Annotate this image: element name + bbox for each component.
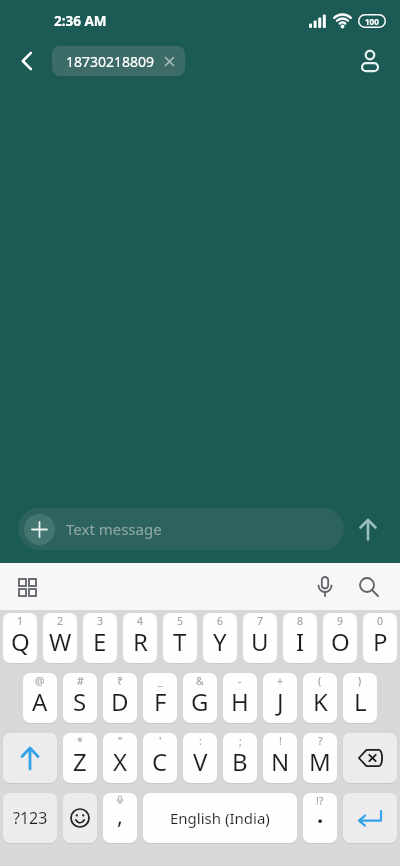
staticText: Z bbox=[73, 745, 87, 778]
staticText: 9 bbox=[337, 614, 344, 628]
button[interactable]: . bbox=[303, 793, 337, 843]
button[interactable]: : bbox=[183, 733, 217, 783]
staticText: G bbox=[191, 685, 209, 718]
button[interactable]: 6 bbox=[203, 613, 237, 663]
button[interactable]: ?123 bbox=[3, 793, 57, 843]
staticText: # bbox=[77, 674, 84, 688]
button[interactable]: _ bbox=[143, 673, 177, 723]
button[interactable]: 7 bbox=[243, 613, 277, 663]
button[interactable]: " bbox=[103, 733, 137, 783]
staticText: 18730218809 bbox=[66, 52, 155, 71]
staticText: ?123 bbox=[13, 807, 48, 829]
staticText: , bbox=[117, 800, 123, 830]
staticText: S bbox=[73, 685, 87, 718]
staticText: & bbox=[196, 674, 204, 688]
staticText: M bbox=[309, 745, 331, 778]
staticText: 3 bbox=[97, 614, 104, 628]
staticText: " bbox=[118, 734, 123, 748]
staticText: 7 bbox=[257, 614, 264, 628]
button[interactable]: ) bbox=[343, 673, 377, 723]
button[interactable]: + bbox=[263, 673, 297, 723]
staticText: 4 bbox=[137, 614, 144, 628]
button[interactable]: 2 bbox=[43, 613, 77, 663]
button[interactable]: ( bbox=[303, 673, 337, 723]
staticText: @ bbox=[35, 674, 45, 688]
staticText: Q bbox=[11, 625, 30, 658]
button[interactable] bbox=[308, 570, 342, 604]
staticText: J bbox=[277, 685, 284, 718]
staticText: K bbox=[313, 685, 328, 718]
staticText: V bbox=[193, 745, 208, 778]
button[interactable]: ₹ bbox=[103, 673, 137, 723]
staticText: D bbox=[111, 685, 129, 718]
staticText: 2:36 AM bbox=[54, 12, 107, 30]
staticText: ? bbox=[318, 734, 323, 748]
button[interactable]: 3 bbox=[83, 613, 117, 663]
staticText: 8 bbox=[297, 614, 304, 628]
button[interactable]: ; bbox=[223, 733, 257, 783]
staticText: T bbox=[173, 625, 187, 658]
button[interactable]: 1 bbox=[3, 613, 37, 663]
staticText: ₹ bbox=[117, 674, 124, 688]
staticText: 6 bbox=[217, 614, 224, 628]
staticText: ' bbox=[159, 734, 162, 748]
button[interactable]: Text message bbox=[18, 508, 344, 550]
button[interactable]: 4 bbox=[123, 613, 157, 663]
button[interactable] bbox=[12, 46, 42, 76]
staticText: _ bbox=[158, 674, 163, 688]
staticText: 2 bbox=[57, 614, 64, 628]
button[interactable]: 9 bbox=[323, 613, 357, 663]
button[interactable]: 18730218809 bbox=[52, 46, 185, 76]
button[interactable] bbox=[3, 733, 57, 783]
button[interactable]: English (India) bbox=[143, 793, 297, 843]
button[interactable]: 0 bbox=[363, 613, 397, 663]
staticText: English (India) bbox=[170, 808, 270, 828]
button[interactable]: * bbox=[63, 733, 97, 783]
button[interactable] bbox=[24, 514, 55, 545]
staticText: O bbox=[331, 625, 350, 658]
staticText: N bbox=[271, 745, 290, 778]
staticText: R bbox=[133, 625, 148, 658]
staticText: * bbox=[77, 734, 83, 748]
button[interactable]: # bbox=[63, 673, 97, 723]
staticText: ; bbox=[239, 734, 242, 748]
button[interactable] bbox=[344, 505, 392, 553]
staticText: ) bbox=[358, 674, 362, 688]
button[interactable]: 8 bbox=[283, 613, 317, 663]
button[interactable] bbox=[10, 570, 44, 604]
button[interactable]: ! bbox=[263, 733, 297, 783]
staticText: P bbox=[373, 625, 388, 658]
button[interactable]: - bbox=[223, 673, 257, 723]
button[interactable]: , bbox=[103, 793, 137, 843]
staticText: L bbox=[354, 685, 367, 718]
staticText: W bbox=[49, 625, 72, 658]
button[interactable] bbox=[63, 793, 97, 843]
staticText: B bbox=[232, 745, 248, 778]
staticText: 100 bbox=[365, 16, 379, 27]
staticText: C bbox=[152, 745, 168, 778]
button[interactable]: ? bbox=[303, 733, 337, 783]
button[interactable] bbox=[343, 733, 397, 783]
staticText: ( bbox=[318, 674, 322, 688]
button[interactable]: 5 bbox=[163, 613, 197, 663]
staticText: . bbox=[317, 799, 324, 829]
staticText: X bbox=[113, 745, 128, 778]
staticText: I bbox=[296, 625, 305, 658]
button[interactable] bbox=[352, 43, 388, 79]
staticText: !? bbox=[316, 794, 324, 808]
staticText: E bbox=[93, 625, 107, 658]
button[interactable]: @ bbox=[23, 673, 57, 723]
staticText: ! bbox=[279, 734, 282, 748]
staticText: 5 bbox=[177, 614, 184, 628]
staticText: A bbox=[32, 685, 48, 718]
staticText: : bbox=[199, 734, 202, 748]
staticText: 0 bbox=[377, 614, 384, 628]
button[interactable] bbox=[343, 793, 397, 843]
staticText: H bbox=[231, 685, 249, 718]
staticText: U bbox=[251, 625, 269, 658]
staticText: F bbox=[154, 685, 167, 718]
button[interactable] bbox=[352, 570, 386, 604]
staticText: Text message bbox=[66, 519, 162, 539]
button[interactable]: ' bbox=[143, 733, 177, 783]
button[interactable]: & bbox=[183, 673, 217, 723]
